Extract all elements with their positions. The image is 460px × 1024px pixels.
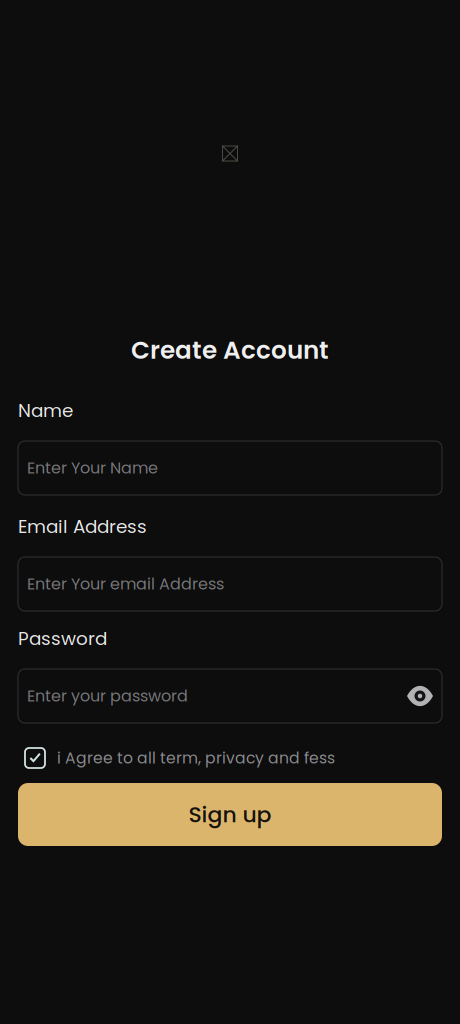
staticText: Create Account [131,333,329,367]
staticText: i Agree to all term, privacy and fess [57,747,335,769]
staticText: Name [18,398,73,423]
image [222,145,238,161]
staticText: Enter Your email Address [27,573,224,595]
button[interactable]: i Agree to all term, privacy and fess [25,743,449,773]
staticText: Password [18,626,107,651]
staticText: Enter your password [27,685,188,707]
button[interactable]: Sign up [18,783,442,846]
button[interactable]: Enter your password [18,669,442,723]
staticText: Email Address [18,514,147,539]
staticText: Sign up [188,799,271,830]
staticText: Enter Your Name [27,457,158,479]
button[interactable]: Enter Your email Address [18,557,442,611]
button[interactable]: Enter Your Name [18,441,442,495]
